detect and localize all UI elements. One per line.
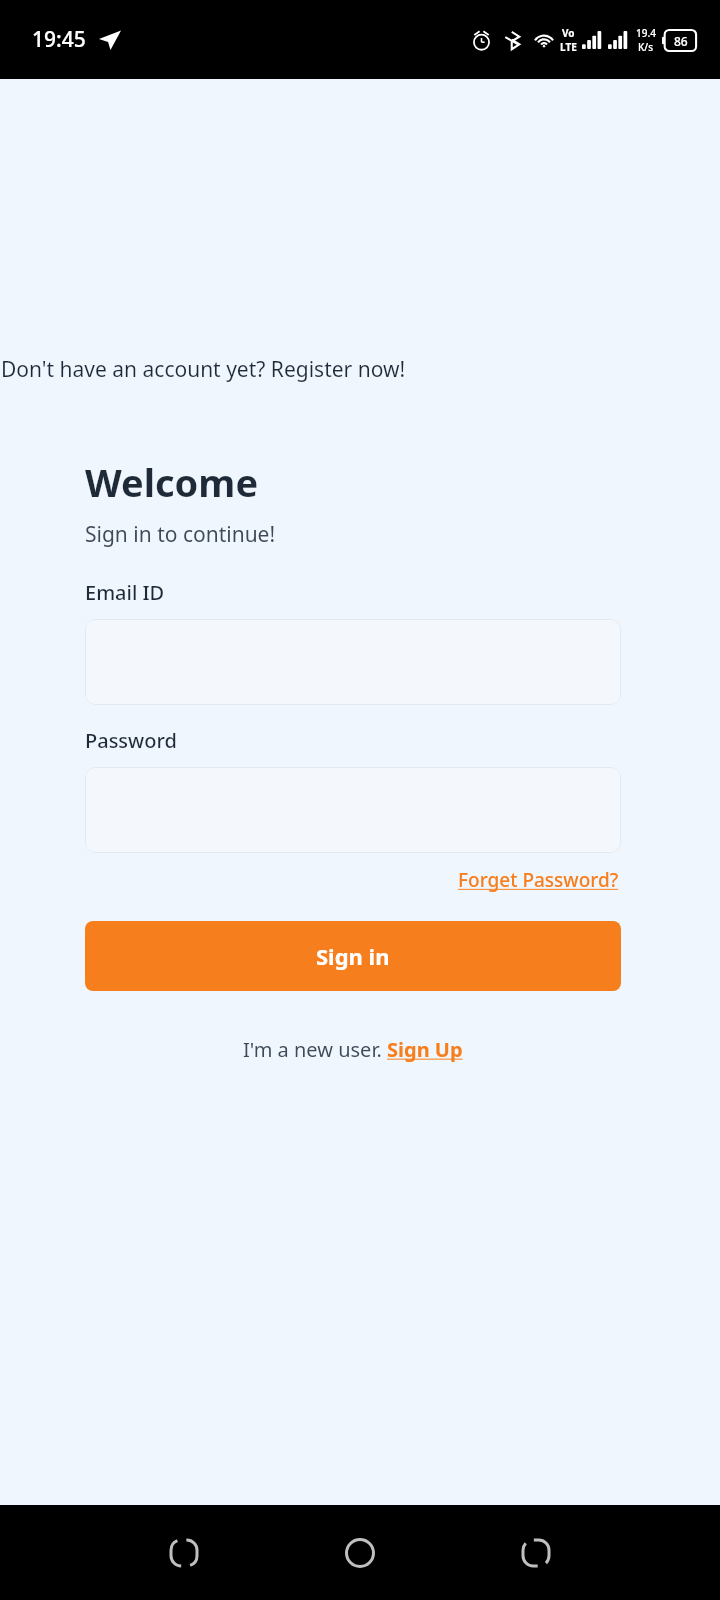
staticText: 19:45 xyxy=(32,25,86,54)
staticText: I'm a new user. xyxy=(243,1036,387,1063)
staticText: Password xyxy=(85,727,177,754)
staticText: LTE xyxy=(560,40,577,54)
button[interactable]: Forget Password? xyxy=(456,865,621,895)
staticText: Welcome xyxy=(85,456,259,508)
staticText: Sign in to continue! xyxy=(85,520,276,549)
staticText: Sign Up xyxy=(387,1036,463,1063)
staticText: 19.4 xyxy=(636,26,656,40)
button[interactable]: Recent apps xyxy=(152,1521,216,1585)
staticText: K/s xyxy=(638,40,654,54)
button[interactable]: Home xyxy=(328,1521,392,1585)
button[interactable]: Sign Up xyxy=(387,1036,463,1063)
button[interactable]: Back xyxy=(504,1521,568,1585)
button[interactable]: Sign in xyxy=(85,921,621,991)
staticText: Sign in xyxy=(316,941,390,971)
staticText: Email ID xyxy=(85,579,165,606)
staticText: Don't have an account yet? Register now! xyxy=(1,355,406,384)
staticText: Forget Password? xyxy=(458,867,619,893)
staticText: Vo xyxy=(562,26,575,40)
staticText: 86 xyxy=(674,33,688,49)
